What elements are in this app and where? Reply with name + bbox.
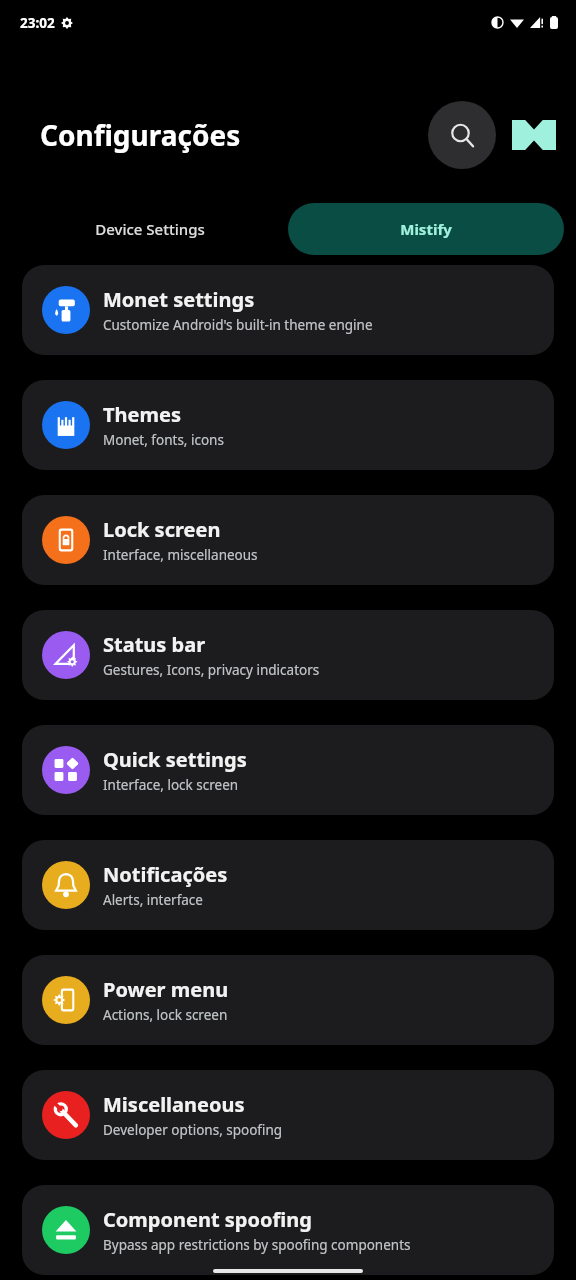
- staticText: Bypass app restrictions by spoofing comp…: [103, 1236, 411, 1254]
- staticText: Monet, fonts, icons: [103, 431, 224, 449]
- button[interactable]: Mistify: [288, 203, 564, 255]
- staticText: Themes: [103, 401, 181, 428]
- staticText: 23:02: [20, 14, 55, 32]
- staticText: Notificações: [103, 861, 228, 888]
- staticText: Configurações: [40, 116, 241, 154]
- button[interactable]: Themes: [22, 380, 554, 470]
- staticText: Interface, lock screen: [103, 776, 239, 794]
- staticText: Customize Android's built-in theme engin…: [103, 316, 373, 334]
- staticText: Mistify: [400, 219, 452, 239]
- button[interactable]: Lock screen: [22, 495, 554, 585]
- button[interactable]: Notificações: [22, 840, 554, 930]
- button[interactable]: Device Settings: [12, 203, 288, 255]
- staticText: Actions, lock screen: [103, 1006, 228, 1024]
- staticText: Developer options, spoofing: [103, 1121, 283, 1139]
- staticText: Miscellaneous: [103, 1091, 245, 1118]
- staticText: Monet settings: [103, 286, 255, 313]
- staticText: Quick settings: [103, 746, 247, 773]
- button[interactable]: Miscellaneous: [22, 1070, 554, 1160]
- button[interactable]: Search: [428, 101, 496, 169]
- staticText: Alerts, interface: [103, 891, 203, 909]
- staticText: Gestures, Icons, privacy indicators: [103, 661, 320, 679]
- staticText: Device Settings: [95, 219, 205, 239]
- staticText: Interface, miscellaneous: [103, 546, 258, 564]
- button[interactable]: Mistify logo: [506, 112, 562, 158]
- button[interactable]: Status bar: [22, 610, 554, 700]
- button[interactable]: Monet settings: [22, 265, 554, 355]
- staticText: Power menu: [103, 976, 229, 1003]
- staticText: Component spoofing: [103, 1206, 312, 1233]
- staticText: Status bar: [103, 631, 206, 658]
- button[interactable]: Quick settings: [22, 725, 554, 815]
- button[interactable]: Component spoofing: [22, 1185, 554, 1275]
- staticText: Lock screen: [103, 516, 221, 543]
- button[interactable]: Power menu: [22, 955, 554, 1045]
